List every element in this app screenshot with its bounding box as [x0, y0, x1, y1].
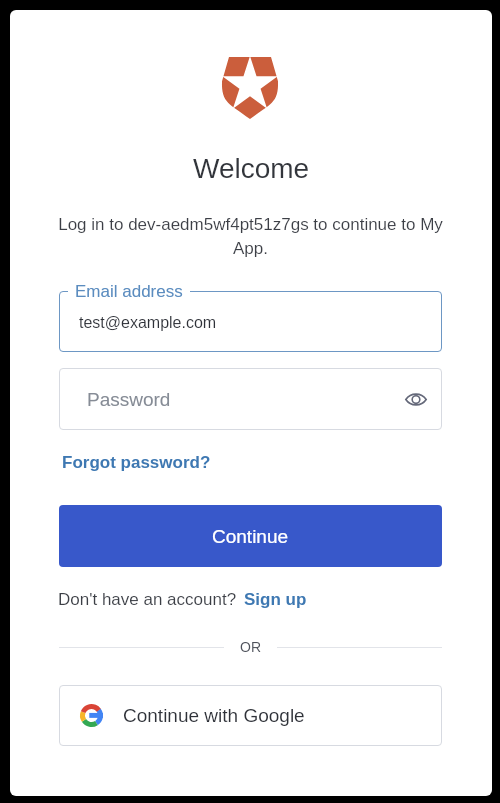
- staticText: Continue: [212, 526, 289, 547]
- staticText: Welcome: [193, 153, 310, 184]
- staticText: Don't have an account?: [58, 590, 237, 609]
- button[interactable]: Forgot password?: [62, 453, 211, 472]
- button[interactable]: Sign up: [244, 590, 307, 609]
- button[interactable]: test@example.com: [59, 291, 442, 352]
- staticText: Continue with Google: [123, 705, 305, 726]
- staticText: Password: [87, 389, 171, 410]
- button[interactable]: Continue: [59, 505, 442, 567]
- staticText: Log in to dev-aedm5wf4pt51z7gs to contin…: [40, 215, 461, 258]
- staticText: Forgot password?: [62, 453, 211, 472]
- staticText: test@example.com: [79, 314, 217, 332]
- staticText: OR: [240, 639, 261, 655]
- button[interactable]: Show password: [402, 385, 430, 413]
- staticText: Sign up: [244, 590, 307, 609]
- button[interactable]: Continue with Google: [59, 685, 442, 746]
- staticText: Email address: [75, 282, 183, 301]
- button[interactable]: Password: [59, 368, 442, 430]
